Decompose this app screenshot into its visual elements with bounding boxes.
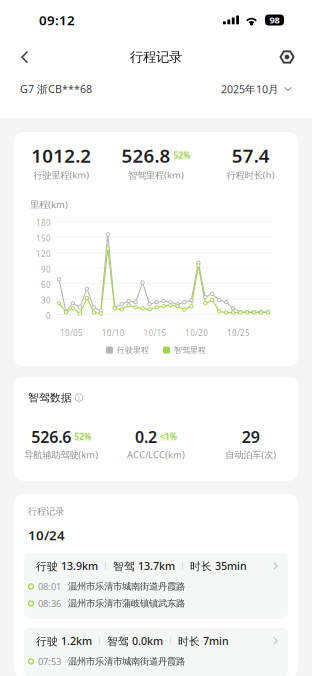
staticText: 行驶里程(km)	[33, 169, 89, 181]
staticText: 温州市乐清市城南街道丹霞路	[68, 581, 185, 592]
staticText: 0	[46, 311, 51, 321]
button[interactable]: 2025年10月	[221, 82, 292, 96]
staticText: 智驾里程(km)	[128, 169, 184, 181]
staticText: 行驶里程	[117, 345, 149, 355]
staticText: 行程时长(h)	[227, 169, 275, 181]
staticText: 526.8	[121, 143, 170, 168]
staticText: 08:36	[38, 597, 61, 610]
button[interactable]: 行驶 13.9km	[24, 553, 288, 619]
staticText: 智驾里程	[174, 345, 206, 355]
staticText: 09:12	[39, 11, 75, 29]
staticText: 98	[269, 14, 279, 26]
staticText: ACC/LCC(km)	[127, 448, 185, 461]
staticText: 1012.2	[31, 143, 91, 168]
staticText: 180	[36, 218, 51, 228]
staticText: 里程(km)	[30, 198, 68, 211]
button[interactable]: 设置	[270, 40, 304, 74]
staticText: 温州市乐清市城南街道丹霞路	[68, 656, 185, 667]
staticText: 行程记录	[28, 506, 64, 517]
staticText: 行程记录	[130, 49, 182, 65]
staticText: 52%	[74, 431, 91, 442]
staticText: 时长 7min	[178, 634, 229, 648]
staticText: 时长 35min	[190, 559, 247, 573]
staticText: 10/05	[60, 328, 83, 338]
staticText: 90	[41, 264, 51, 275]
staticText: 智驾 0.0km	[107, 634, 163, 648]
staticText: 52%	[173, 150, 190, 161]
button[interactable]: 返回	[8, 40, 42, 74]
staticText: 10/15	[143, 328, 166, 338]
staticText: 10/20	[185, 328, 208, 338]
staticText: 120	[36, 249, 51, 259]
staticText: 10/24	[28, 526, 65, 544]
staticText: 智驾数据	[28, 391, 72, 404]
button[interactable]: 行驶 1.2km	[24, 628, 288, 676]
staticText: i	[78, 393, 80, 402]
staticText: G7 浙CB***68	[20, 82, 92, 96]
staticText: 2025年10月	[221, 82, 279, 96]
staticText: 智驾 13.7km	[113, 559, 175, 573]
staticText: 07:53	[38, 655, 61, 668]
staticText: 08:01	[38, 580, 61, 593]
staticText: 0.2	[135, 426, 157, 447]
staticText: 30	[41, 295, 51, 306]
staticText: 29	[242, 426, 260, 447]
staticText: 导航辅助驾驶(km)	[24, 448, 98, 461]
staticText: 温州市乐清市蒲岐镇镇武东路	[68, 598, 185, 609]
staticText: 10/25	[227, 328, 250, 338]
staticText: <1%	[160, 431, 177, 442]
staticText: 自动泊车(次)	[225, 448, 276, 461]
staticText: 57.4	[232, 143, 270, 168]
staticText: 行驶 13.9km	[36, 559, 98, 573]
staticText: 行驶 1.2km	[36, 634, 92, 648]
staticText: 150	[36, 233, 51, 244]
staticText: 526.6	[31, 426, 71, 447]
staticText: 10/10	[102, 328, 125, 338]
staticText: 60	[41, 280, 51, 290]
